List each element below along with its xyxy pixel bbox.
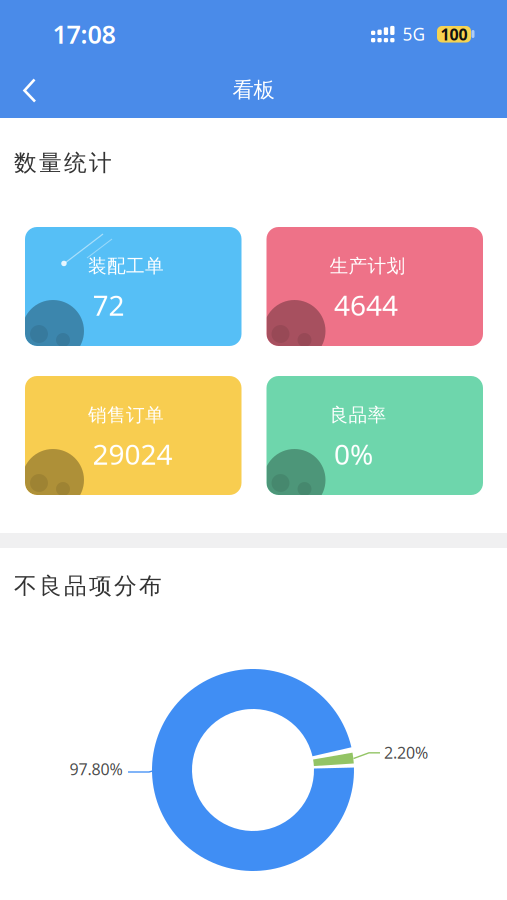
staticText: 0% [334, 435, 373, 473]
staticText: 不良品项分布 [14, 572, 162, 600]
button[interactable]: 良品率 [266, 376, 483, 495]
staticText: 5G [402, 22, 425, 45]
staticText: 97.80% [69, 758, 122, 780]
staticText: 29024 [92, 435, 172, 473]
staticText: 2.20% [384, 742, 428, 763]
button[interactable]: Back [8, 73, 52, 107]
staticText: 100 [440, 24, 467, 45]
staticText: 生产计划 [329, 254, 405, 277]
staticText: 装配工单 [88, 254, 164, 277]
button[interactable]: 装配工单 [25, 227, 241, 346]
staticText: 72 [92, 286, 124, 324]
staticText: 良品率 [329, 403, 386, 426]
staticText: 数量统计 [14, 149, 112, 177]
button[interactable]: 销售订单 [25, 376, 241, 495]
staticText: 看板 [232, 77, 274, 103]
staticText: 销售订单 [88, 403, 164, 426]
button[interactable]: 生产计划 [266, 227, 483, 346]
staticText: 17:08 [52, 17, 115, 51]
staticText: 4644 [334, 286, 398, 324]
